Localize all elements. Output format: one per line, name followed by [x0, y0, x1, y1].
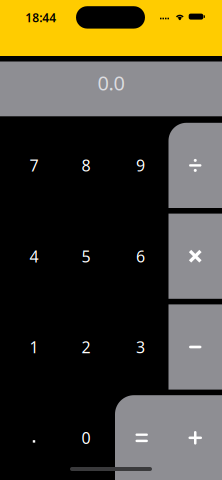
button[interactable]: 8	[59, 123, 113, 208]
staticText: 18:44	[25, 10, 56, 25]
staticText: 9	[136, 155, 145, 176]
button[interactable]: Multiply	[168, 214, 222, 299]
button[interactable]: Decimal point	[7, 395, 61, 480]
button[interactable]: Subtract	[168, 304, 222, 390]
button[interactable]: 1	[7, 304, 61, 390]
button[interactable]: 0	[59, 395, 113, 480]
button[interactable]: 7	[7, 123, 61, 208]
button[interactable]: 3	[114, 304, 167, 390]
staticText: 0	[81, 427, 90, 448]
staticText: 8	[81, 155, 90, 176]
button[interactable]: Add	[168, 395, 222, 480]
staticText: 5	[81, 246, 90, 267]
button[interactable]: 5	[59, 214, 113, 299]
button[interactable]: Divide	[168, 123, 222, 208]
staticText: 2	[81, 336, 90, 358]
button[interactable]: Equals	[115, 395, 168, 480]
button[interactable]: 6	[114, 214, 167, 299]
staticText: 0.0	[97, 69, 124, 96]
staticText: 7	[29, 155, 38, 176]
button[interactable]: 2	[59, 304, 113, 390]
staticText: 6	[136, 246, 145, 267]
button[interactable]: 4	[7, 214, 61, 299]
staticText: 3	[136, 336, 145, 358]
staticText: 1	[29, 336, 38, 358]
staticText: 4	[29, 246, 38, 267]
button[interactable]: 9	[114, 123, 167, 208]
